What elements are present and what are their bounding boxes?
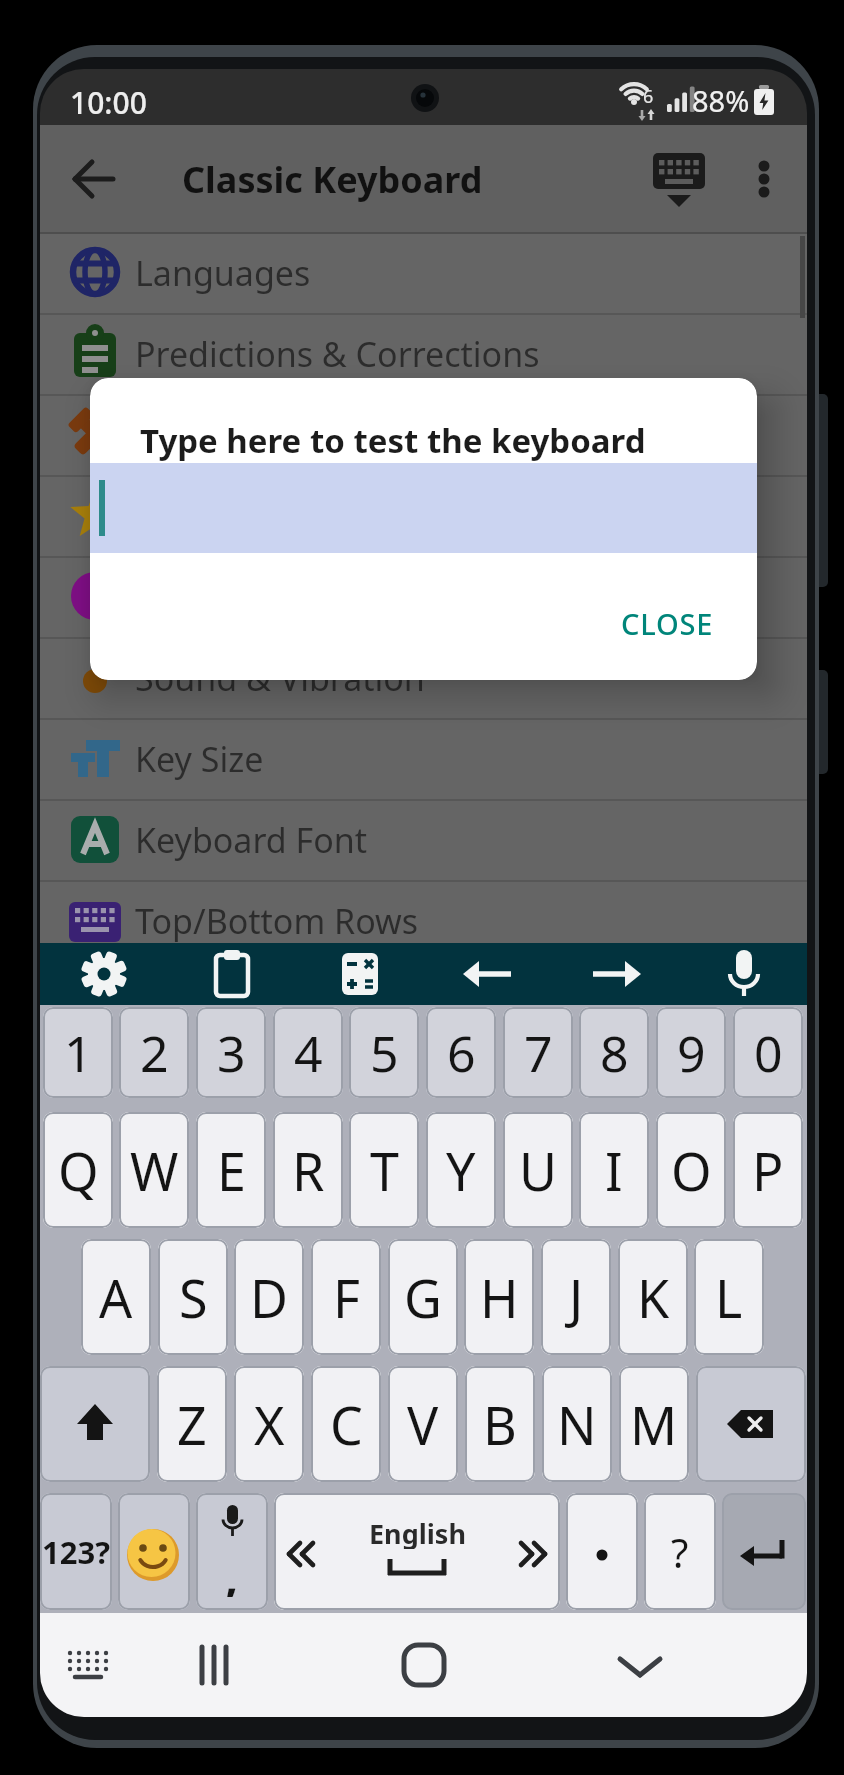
staticText: 4 — [294, 1019, 323, 1087]
staticText: 9 — [677, 1019, 706, 1087]
staticText: Q — [58, 1135, 99, 1206]
button[interactable]: H — [464, 1239, 534, 1355]
button[interactable]: English — [274, 1493, 560, 1610]
staticText: Languages — [135, 250, 311, 296]
staticText: C — [330, 1389, 363, 1460]
button[interactable]: M — [619, 1366, 689, 1482]
button[interactable] — [73, 943, 135, 1005]
button[interactable]: 6 — [426, 1007, 496, 1098]
button[interactable]: G — [388, 1239, 458, 1355]
button[interactable] — [585, 943, 647, 1005]
button[interactable] — [722, 1493, 806, 1610]
button[interactable] — [68, 153, 120, 205]
button[interactable]: 3 — [196, 1007, 266, 1098]
button[interactable]: Sound & Vibration — [40, 637, 807, 718]
button[interactable] — [713, 943, 775, 1005]
button[interactable] — [740, 153, 788, 205]
button[interactable]: B — [465, 1366, 535, 1482]
staticText: E — [217, 1135, 246, 1206]
button[interactable]: P — [733, 1112, 803, 1228]
button[interactable]: N — [542, 1366, 612, 1482]
button[interactable] — [394, 1637, 454, 1693]
staticText: N — [557, 1389, 597, 1460]
staticText: Y — [446, 1135, 476, 1206]
staticText: 6 — [447, 1019, 476, 1087]
staticText: ? — [671, 1525, 689, 1579]
button[interactable]: , — [196, 1493, 268, 1610]
staticText: 0 — [754, 1019, 783, 1087]
button[interactable]: 1 — [43, 1007, 113, 1098]
button[interactable]: Z — [157, 1366, 227, 1482]
button[interactable]: R — [273, 1112, 343, 1228]
button[interactable]: 0 — [733, 1007, 803, 1098]
staticText: 5 — [370, 1019, 399, 1087]
button[interactable]: J — [541, 1239, 611, 1355]
staticText: Keyboard Font — [135, 817, 368, 863]
staticText: Z — [177, 1389, 207, 1460]
staticText: B — [483, 1389, 517, 1460]
button[interactable] — [60, 1637, 120, 1693]
button[interactable]: T — [349, 1112, 419, 1228]
button[interactable] — [90, 463, 757, 553]
button[interactable]: Languages — [40, 232, 807, 313]
button[interactable] — [201, 943, 263, 1005]
button[interactable]: 9 — [656, 1007, 726, 1098]
button[interactable] — [457, 943, 519, 1005]
button[interactable]: CLOSE — [602, 593, 732, 653]
button[interactable]: D — [234, 1239, 304, 1355]
button[interactable]: Top/Bottom Rows — [40, 880, 807, 961]
button[interactable] — [566, 1493, 638, 1610]
staticText: H — [480, 1262, 519, 1333]
button[interactable]: A — [81, 1239, 151, 1355]
button[interactable]: 5 — [349, 1007, 419, 1098]
staticText: Top/Bottom Rows — [135, 898, 419, 944]
button[interactable]: 4 — [273, 1007, 343, 1098]
staticText: , — [225, 1545, 239, 1597]
button[interactable]: 2 — [119, 1007, 189, 1098]
button[interactable]: U — [503, 1112, 573, 1228]
button[interactable]: W — [119, 1112, 189, 1228]
button[interactable] — [610, 1637, 670, 1693]
staticText: M — [630, 1389, 678, 1460]
staticText: D — [250, 1262, 288, 1333]
button[interactable]: Key Size — [40, 718, 807, 799]
staticText: Type here to test the keyboard — [140, 418, 646, 463]
staticText: A — [99, 1262, 133, 1333]
staticText: 3 — [217, 1019, 246, 1087]
button[interactable]: V — [388, 1366, 458, 1482]
button[interactable]: L — [694, 1239, 764, 1355]
button[interactable] — [40, 394, 807, 475]
button[interactable] — [329, 943, 391, 1005]
button[interactable]: Y — [426, 1112, 496, 1228]
button[interactable] — [118, 1493, 190, 1610]
button[interactable]: X — [234, 1366, 304, 1482]
staticText: 10:00 — [70, 82, 147, 122]
button[interactable]: 7 — [503, 1007, 573, 1098]
button[interactable]: Keyboard Font — [40, 799, 807, 880]
staticText: English — [369, 1515, 466, 1549]
button[interactable]: O — [656, 1112, 726, 1228]
button[interactable] — [696, 1366, 806, 1482]
button[interactable] — [186, 1637, 246, 1693]
staticText: Classic Keyboard — [182, 155, 483, 204]
button[interactable]: Q — [43, 1112, 113, 1228]
button[interactable]: ? — [644, 1493, 716, 1610]
button[interactable]: F — [311, 1239, 381, 1355]
button[interactable]: I — [579, 1112, 649, 1228]
button[interactable]: K — [618, 1239, 688, 1355]
button[interactable] — [40, 556, 807, 637]
button[interactable] — [40, 475, 807, 556]
staticText: 7 — [524, 1019, 553, 1087]
button[interactable]: Predictions & Corrections — [40, 313, 807, 394]
button[interactable]: 8 — [579, 1007, 649, 1098]
button[interactable]: C — [311, 1366, 381, 1482]
button[interactable]: S — [158, 1239, 228, 1355]
staticText: W — [130, 1135, 179, 1206]
button[interactable]: 123? — [40, 1493, 112, 1610]
button[interactable] — [650, 147, 710, 213]
button[interactable] — [40, 1366, 150, 1482]
button[interactable]: E — [196, 1112, 266, 1228]
staticText: Sound & Vibration — [135, 655, 425, 701]
staticText: X — [254, 1389, 285, 1460]
staticText: 1 — [64, 1019, 93, 1087]
